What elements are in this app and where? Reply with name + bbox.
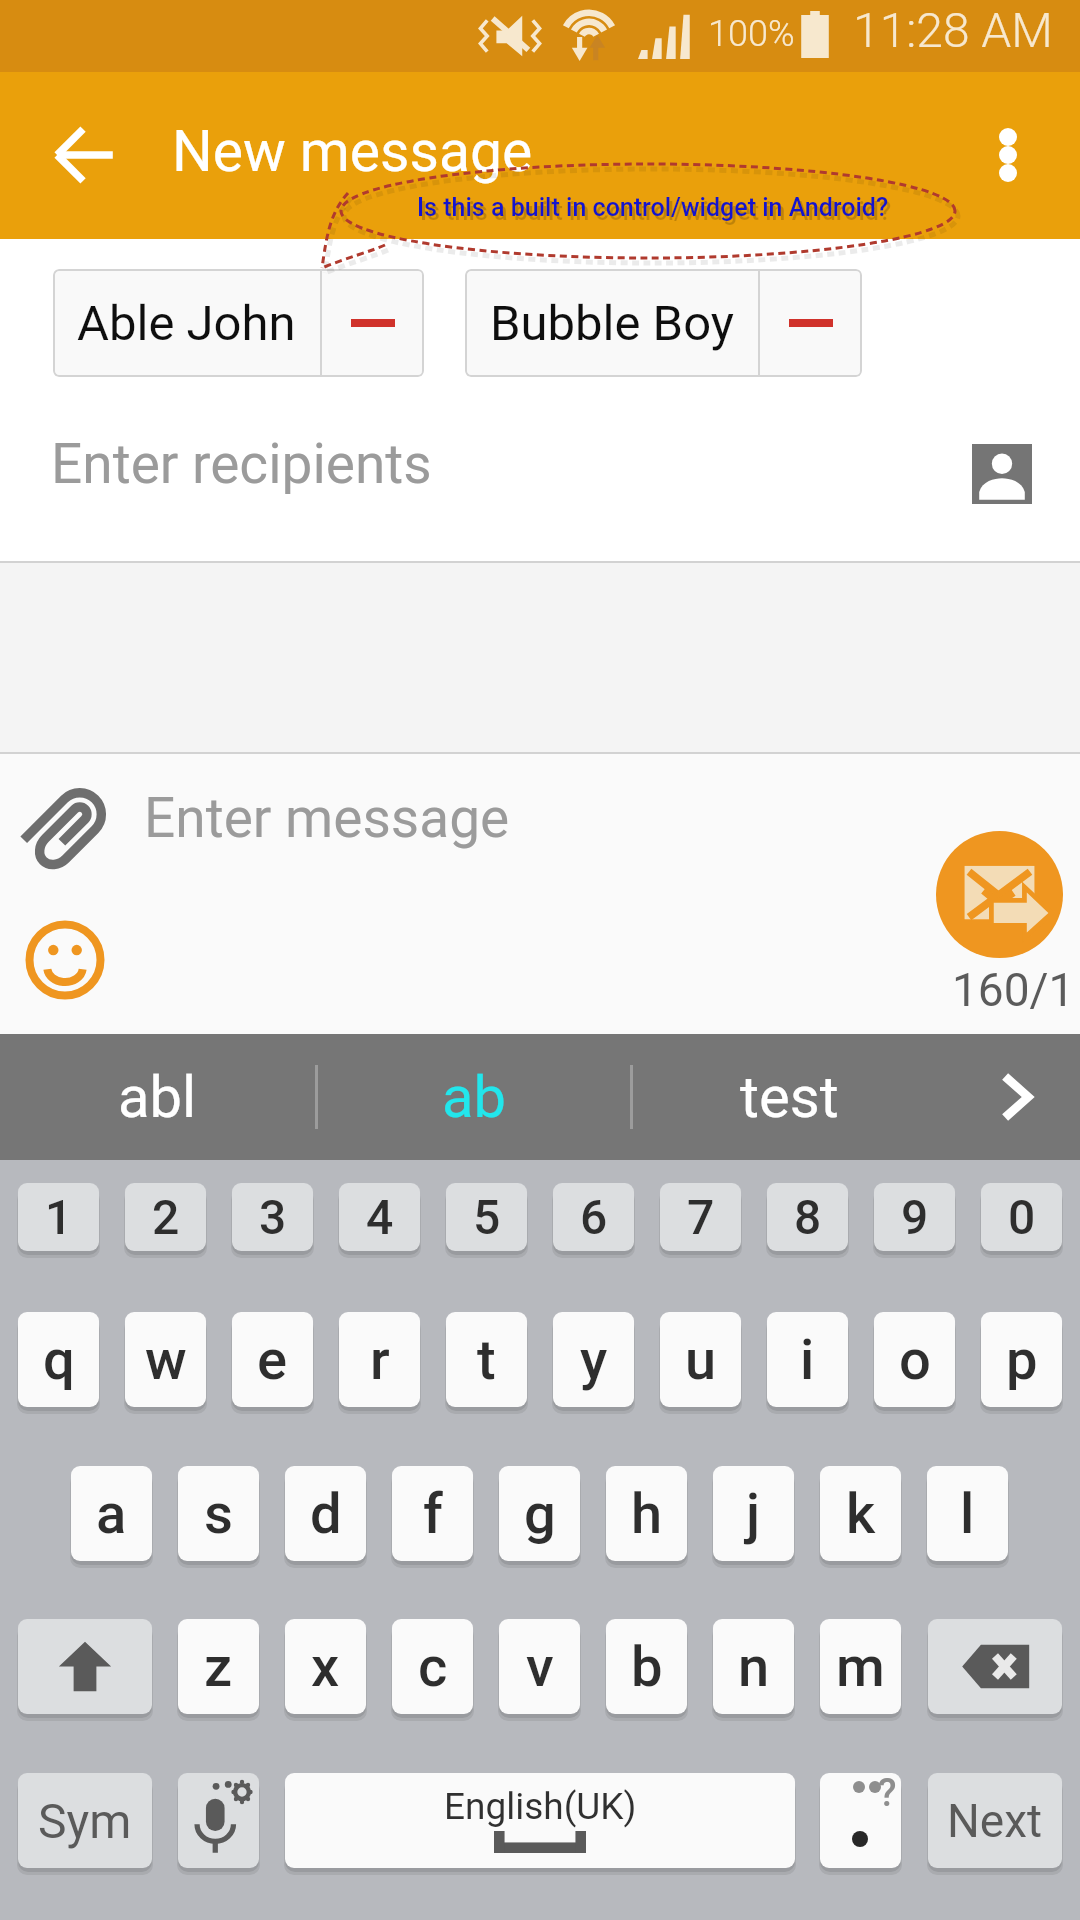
staticText: o bbox=[899, 1327, 931, 1393]
staticText: n bbox=[738, 1634, 770, 1700]
staticText: p bbox=[1006, 1327, 1038, 1393]
staticText: English(UK) bbox=[444, 1785, 637, 1828]
staticText: g bbox=[524, 1481, 556, 1547]
button[interactable]: Attach bbox=[22, 782, 112, 872]
button[interactable]: q bbox=[18, 1312, 99, 1407]
button[interactable]: e bbox=[232, 1312, 313, 1407]
button[interactable]: Voice input bbox=[178, 1773, 259, 1868]
staticText: test bbox=[740, 1063, 839, 1131]
button[interactable]: More suggestions bbox=[960, 1034, 1080, 1160]
staticText: e bbox=[257, 1327, 288, 1393]
button[interactable]: Backspace bbox=[928, 1619, 1062, 1714]
button[interactable]: 5 bbox=[446, 1183, 527, 1251]
staticText: q bbox=[43, 1327, 75, 1393]
button[interactable]: Period bbox=[820, 1773, 901, 1868]
staticText: t bbox=[477, 1327, 496, 1393]
button[interactable]: ab bbox=[318, 1034, 630, 1160]
staticText: abl bbox=[118, 1063, 197, 1131]
staticText: 100% bbox=[708, 13, 795, 55]
button[interactable]: n bbox=[713, 1619, 794, 1714]
button[interactable]: Sym bbox=[18, 1773, 152, 1868]
staticText: c bbox=[418, 1634, 448, 1700]
button[interactable]: o bbox=[874, 1312, 955, 1407]
button[interactable]: g bbox=[499, 1466, 580, 1561]
staticText: 6 bbox=[580, 1189, 608, 1245]
staticText: 4 bbox=[366, 1189, 394, 1245]
staticText: 7 bbox=[687, 1189, 715, 1245]
button[interactable]: p bbox=[981, 1312, 1062, 1407]
button[interactable]: Send bbox=[936, 831, 1063, 958]
staticText: h bbox=[631, 1481, 663, 1547]
staticText: 0 bbox=[1008, 1189, 1036, 1245]
staticText: d bbox=[310, 1481, 342, 1547]
staticText: New message bbox=[172, 118, 533, 185]
button[interactable]: abl bbox=[0, 1034, 315, 1160]
button[interactable]: More options bbox=[968, 115, 1048, 195]
button[interactable]: m bbox=[820, 1619, 901, 1714]
button[interactable]: 3 bbox=[232, 1183, 313, 1251]
button[interactable]: a bbox=[71, 1466, 152, 1561]
button[interactable]: 9 bbox=[874, 1183, 955, 1251]
staticText: 1 bbox=[45, 1189, 73, 1245]
staticText: Is this a built in control/widget in And… bbox=[420, 197, 892, 226]
button[interactable]: j bbox=[713, 1466, 794, 1561]
button[interactable]: k bbox=[820, 1466, 901, 1561]
button[interactable]: h bbox=[606, 1466, 687, 1561]
button[interactable]: 0 bbox=[981, 1183, 1062, 1251]
button[interactable]: Emoji bbox=[25, 920, 105, 1000]
button[interactable]: z bbox=[178, 1619, 259, 1714]
button[interactable]: u bbox=[660, 1312, 741, 1407]
button[interactable]: test bbox=[633, 1034, 945, 1160]
staticText: 160/1 bbox=[952, 963, 1075, 1017]
button[interactable]: t bbox=[446, 1312, 527, 1407]
staticText: i bbox=[800, 1327, 815, 1393]
staticText: 3 bbox=[259, 1189, 287, 1245]
button[interactable]: 6 bbox=[553, 1183, 634, 1251]
staticText: ? bbox=[878, 1773, 897, 1816]
staticText: Enter recipients bbox=[51, 432, 432, 496]
button[interactable]: x bbox=[285, 1619, 366, 1714]
button[interactable]: 2 bbox=[125, 1183, 206, 1251]
staticText: l bbox=[960, 1481, 975, 1547]
button[interactable]: f bbox=[392, 1466, 473, 1561]
staticText: Bubble Boy bbox=[490, 295, 734, 352]
button[interactable]: Back bbox=[36, 107, 132, 203]
button[interactable]: Add contact bbox=[956, 428, 1048, 520]
staticText: s bbox=[204, 1481, 233, 1547]
button[interactable]: r bbox=[339, 1312, 420, 1407]
button[interactable]: 4 bbox=[339, 1183, 420, 1251]
staticText: k bbox=[846, 1481, 876, 1547]
staticText: ab bbox=[442, 1063, 507, 1131]
staticText: r bbox=[370, 1327, 390, 1393]
button[interactable]: 7 bbox=[660, 1183, 741, 1251]
button[interactable]: c bbox=[392, 1619, 473, 1714]
staticText: Next bbox=[947, 1794, 1043, 1848]
button[interactable]: Shift bbox=[18, 1619, 152, 1714]
button[interactable]: Space bbox=[285, 1773, 795, 1868]
button[interactable]: b bbox=[606, 1619, 687, 1714]
button[interactable]: 8 bbox=[767, 1183, 848, 1251]
button[interactable]: Able John bbox=[53, 269, 424, 377]
button[interactable]: 1 bbox=[18, 1183, 99, 1251]
staticText: f bbox=[423, 1481, 443, 1547]
staticText: 2 bbox=[152, 1189, 180, 1245]
button[interactable]: l bbox=[927, 1466, 1008, 1561]
staticText: j bbox=[746, 1481, 761, 1547]
staticText: Able John bbox=[77, 295, 296, 352]
staticText: Enter message bbox=[144, 786, 510, 850]
staticText: z bbox=[204, 1634, 233, 1700]
button[interactable]: Bubble Boy bbox=[465, 269, 862, 377]
button[interactable]: v bbox=[499, 1619, 580, 1714]
button[interactable]: i bbox=[767, 1312, 848, 1407]
staticText: m bbox=[836, 1634, 885, 1700]
staticText: 8 bbox=[794, 1189, 822, 1245]
staticText: Is this a built in control/widget in And… bbox=[417, 193, 889, 222]
button[interactable]: d bbox=[285, 1466, 366, 1561]
staticText: a bbox=[96, 1481, 127, 1547]
button[interactable]: s bbox=[178, 1466, 259, 1561]
staticText: Sym bbox=[38, 1793, 132, 1849]
button[interactable]: w bbox=[125, 1312, 206, 1407]
button[interactable]: y bbox=[553, 1312, 634, 1407]
staticText: 11:28 AM bbox=[853, 2, 1053, 58]
button[interactable]: Next bbox=[928, 1773, 1062, 1868]
